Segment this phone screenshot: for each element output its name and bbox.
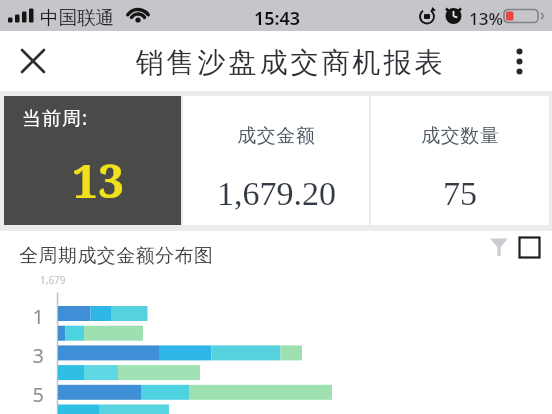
staticText: 当前周: — [22, 105, 89, 131]
staticText: 成交数量 — [421, 124, 499, 148]
staticText: 13% — [469, 7, 503, 30]
staticText: 5 — [20, 381, 44, 408]
staticText: 75 — [443, 175, 477, 213]
staticText: 1,679.20 — [217, 175, 336, 213]
staticText: 中国联通 — [40, 6, 114, 29]
staticText: 3 — [20, 342, 44, 369]
button[interactable]: 成交金额 — [183, 96, 369, 225]
button[interactable]: 成交数量 — [371, 96, 549, 225]
staticText: 1 — [20, 303, 44, 330]
button[interactable]: 当前周: — [4, 96, 181, 225]
staticText: 13 — [72, 149, 124, 212]
button[interactable] — [0, 31, 56, 91]
staticText: 1,679 — [40, 273, 66, 287]
button[interactable] — [484, 231, 514, 265]
staticText: 15:43 — [254, 6, 301, 31]
staticText: 销售沙盘成交商机报表 — [134, 45, 444, 80]
button[interactable] — [512, 31, 552, 81]
staticText: 成交金额 — [237, 124, 315, 148]
button[interactable] — [514, 231, 546, 265]
staticText: 全周期成交金额分布图 — [19, 244, 213, 268]
